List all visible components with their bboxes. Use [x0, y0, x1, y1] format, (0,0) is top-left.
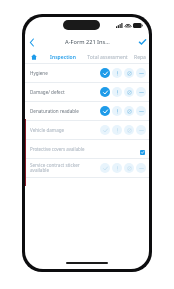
button[interactable]: Denaturation readable	[25, 102, 149, 120]
button[interactable]: Not OK	[124, 68, 134, 78]
staticText: Inspection	[50, 54, 76, 61]
button[interactable]: Damage/ defect	[25, 83, 149, 101]
button[interactable]: OK	[100, 163, 110, 173]
button[interactable]: Not OK	[124, 125, 134, 135]
button[interactable]: Confirm	[135, 35, 149, 49]
staticText: Vehicle damage	[30, 127, 100, 133]
staticText: Repa	[134, 54, 146, 61]
button[interactable]: OK	[100, 125, 110, 135]
button[interactable]: OK	[100, 87, 110, 97]
button[interactable]: OK	[100, 68, 110, 78]
button[interactable]: Warning	[112, 68, 122, 78]
staticText: Service contract sticker available	[30, 162, 100, 174]
staticText: A-Form 221 Ins...	[65, 38, 110, 46]
button[interactable]: Warning	[112, 87, 122, 97]
staticText: Damage/ defect	[30, 89, 100, 95]
button[interactable]: Inspection	[42, 50, 83, 64]
button[interactable]: Warning	[112, 106, 122, 116]
button[interactable]: Vehicle damage	[25, 121, 149, 139]
button[interactable]: Service contract sticker available	[25, 159, 149, 177]
button[interactable]: Repa	[131, 50, 149, 64]
button[interactable]: Not OK	[124, 106, 134, 116]
button[interactable]: Not applicable	[136, 106, 146, 116]
button[interactable]: Hygiene	[25, 64, 149, 82]
button[interactable]: Not applicable	[136, 68, 146, 78]
button[interactable]: Total assessment	[83, 50, 131, 64]
button[interactable]: Protective covers available	[25, 140, 149, 158]
button[interactable]: Not OK	[124, 163, 134, 173]
button[interactable]: Back	[25, 35, 39, 49]
button[interactable]: Not OK	[124, 87, 134, 97]
staticText: Total assessment	[87, 54, 128, 61]
button[interactable]: Protective covers available checkbox	[140, 150, 145, 155]
button[interactable]: OK	[100, 106, 110, 116]
button[interactable]: Warning	[112, 163, 122, 173]
button[interactable]: Not applicable	[136, 163, 146, 173]
staticText: Denaturation readable	[30, 108, 100, 114]
button[interactable]: Not applicable	[136, 87, 146, 97]
staticText: Hygiene	[30, 70, 100, 76]
button[interactable]: Not applicable	[136, 125, 146, 135]
button[interactable]: Warning	[112, 125, 122, 135]
button[interactable]: Home	[25, 50, 42, 64]
staticText: Protective covers available	[30, 146, 140, 152]
